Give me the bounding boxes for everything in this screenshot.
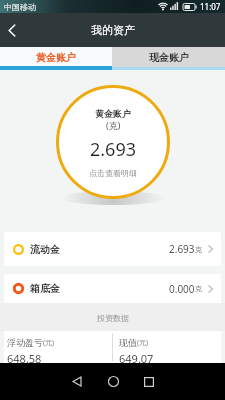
staticText: 中国移动 (4, 2, 36, 12)
button[interactable]: 现金账户 (112, 47, 225, 70)
staticText: 11:07 (200, 1, 221, 12)
staticText: 克 (195, 245, 202, 254)
staticText: 黄金账户 (36, 51, 76, 64)
staticText: (元) (137, 338, 149, 348)
staticText: 箱底金 (30, 282, 60, 295)
staticText: 648.58 (7, 351, 42, 363)
staticText: 649.07 (119, 351, 154, 363)
staticText: (元) (43, 338, 55, 348)
button[interactable] (59, 363, 95, 400)
staticText: 2.693 (169, 242, 195, 256)
staticText: 现金账户 (149, 51, 189, 64)
button[interactable] (131, 363, 167, 400)
button[interactable] (95, 363, 131, 400)
staticText: 0.000 (169, 282, 195, 296)
button[interactable]: 流动金 (4, 232, 221, 266)
button[interactable]: 黄金账户 (89, 108, 137, 178)
staticText: 2.693 (90, 137, 137, 162)
staticText: 我的资产 (91, 23, 135, 37)
staticText: 点击查看明细 (89, 168, 137, 178)
button[interactable] (0, 15, 24, 45)
staticText: 现值 (119, 337, 137, 348)
button[interactable]: 箱底金 (4, 274, 221, 303)
staticText: 流动金 (30, 243, 60, 256)
staticText: 克 (195, 284, 202, 293)
staticText: 黄金账户 (95, 108, 131, 119)
staticText: 投资数据 (97, 313, 129, 323)
staticText: (克) (106, 119, 121, 131)
button[interactable]: 黄金账户 (0, 47, 112, 70)
staticText: 浮动盈亏 (7, 337, 43, 348)
